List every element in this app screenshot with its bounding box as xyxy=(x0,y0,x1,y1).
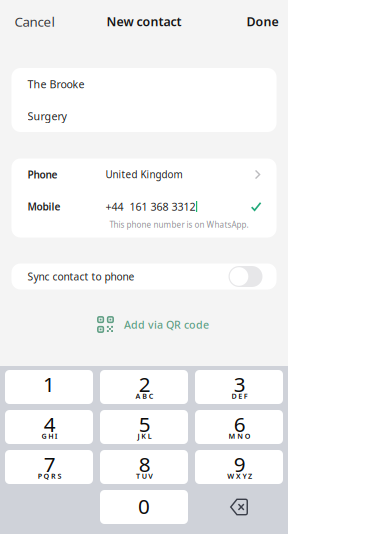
staticText: New contact xyxy=(106,13,181,30)
button[interactable]: 7 xyxy=(5,450,93,484)
staticText: United Kingdom xyxy=(105,168,182,181)
button[interactable]: Cancel xyxy=(0,2,69,41)
staticText: S xyxy=(58,471,62,481)
staticText: J xyxy=(138,431,140,441)
button[interactable]: The Brooke xyxy=(11,68,276,100)
staticText: Y xyxy=(242,471,246,481)
staticText: The Brooke xyxy=(27,77,84,91)
staticText: 9 xyxy=(234,450,246,478)
staticText: R xyxy=(51,471,56,481)
button[interactable]: Done xyxy=(237,3,288,40)
staticText: X xyxy=(236,471,241,481)
staticText: D xyxy=(232,391,237,401)
staticText: U xyxy=(142,471,147,481)
staticText: C xyxy=(149,391,154,401)
staticText: T xyxy=(136,471,140,481)
staticText: Add via QR code xyxy=(124,317,209,332)
staticText: 3 xyxy=(234,370,246,398)
staticText: A xyxy=(136,391,141,401)
staticText: P xyxy=(38,471,42,481)
button[interactable]: 4 xyxy=(5,410,93,444)
button[interactable]: 8 xyxy=(100,450,188,484)
staticText: 5 xyxy=(139,410,151,438)
button[interactable]: 0 xyxy=(100,490,188,524)
staticText: Q xyxy=(43,471,49,481)
staticText: V xyxy=(148,471,153,481)
staticText: 6 xyxy=(234,410,246,438)
staticText: Surgery xyxy=(27,109,66,123)
staticText: This phone number is on WhatsApp. xyxy=(109,219,248,230)
staticText: 4 xyxy=(44,410,56,438)
button[interactable]: Sync contact to phone xyxy=(228,266,262,287)
staticText: F xyxy=(244,391,248,401)
staticText: 1 xyxy=(43,370,55,398)
button[interactable]: 1 xyxy=(5,370,93,404)
staticText: M xyxy=(229,431,236,441)
staticText: I xyxy=(55,431,58,441)
button[interactable]: Delete xyxy=(195,490,283,524)
staticText: G xyxy=(42,431,47,441)
button[interactable]: Phone xyxy=(11,158,276,190)
staticText: Mobile xyxy=(27,200,60,213)
button[interactable]: Add via QR code xyxy=(82,313,206,336)
button[interactable]: 3 xyxy=(195,370,283,404)
button[interactable]: Surgery xyxy=(11,100,276,132)
button[interactable]: 2 xyxy=(100,370,188,404)
button[interactable]: 6 xyxy=(195,410,283,444)
staticText: 2 xyxy=(139,370,151,398)
staticText: 8 xyxy=(139,450,151,478)
staticText: L xyxy=(148,431,152,441)
button[interactable]: 9 xyxy=(195,450,283,484)
staticText: Z xyxy=(248,471,252,481)
staticText: 7 xyxy=(44,450,56,478)
staticText: N xyxy=(237,431,243,441)
staticText: Phone xyxy=(27,168,57,181)
staticText: Done xyxy=(246,13,278,30)
staticText: 0 xyxy=(138,492,150,520)
staticText: +44 161 368 3312 xyxy=(105,199,195,214)
staticText: H xyxy=(48,431,53,441)
staticText: W xyxy=(227,471,234,481)
staticText: E xyxy=(238,391,242,401)
staticText: B xyxy=(142,391,147,401)
staticText: K xyxy=(141,431,146,441)
staticText: Cancel xyxy=(14,12,54,31)
button[interactable]: 5 xyxy=(100,410,188,444)
staticText: Sync contact to phone xyxy=(27,269,134,283)
staticText: O xyxy=(245,431,251,441)
